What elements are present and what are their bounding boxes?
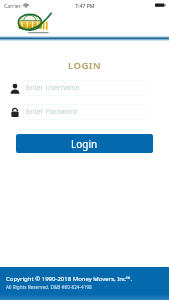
staticText: LOGIN [68,59,101,72]
staticText: Enter Password [26,107,78,117]
staticText: Carrier [4,2,21,9]
staticText: Login [71,137,98,151]
staticText: Enter Username [26,83,80,93]
staticText: 7:47 PM [75,2,95,9]
button[interactable]: Login [16,134,153,153]
button[interactable]: Enter Username [10,80,151,96]
staticText: Copyright © 1990-2018 Money Movers, Inc™… [6,275,133,283]
staticText: All Rights Reserved. D&B #80-824-4198 [6,284,92,290]
button[interactable]: Enter Password [10,104,151,120]
